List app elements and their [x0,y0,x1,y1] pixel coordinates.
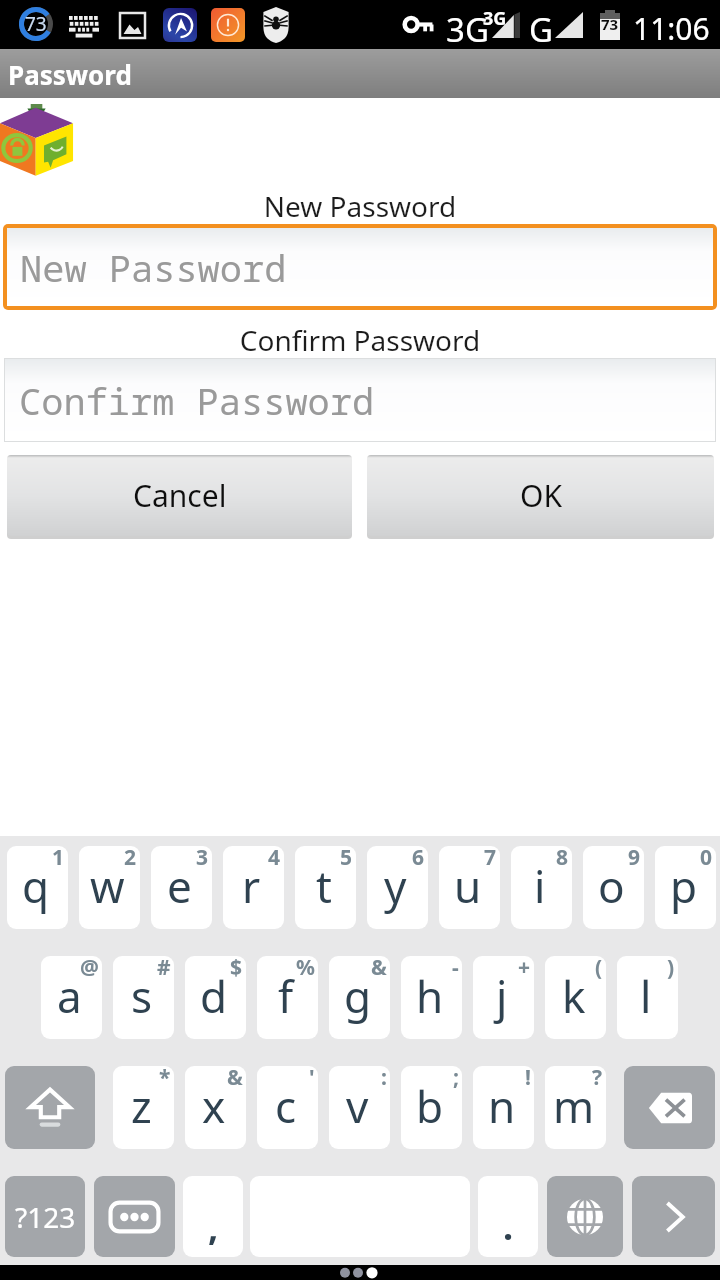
button[interactable]: ; [401,1066,462,1149]
staticText: y [384,856,407,916]
button[interactable]: Emoji [94,1176,175,1257]
button[interactable]: @ [41,956,102,1039]
staticText: q [22,856,50,916]
staticText: 5 [340,846,353,872]
staticText: ; [453,1066,459,1092]
button[interactable]: - [401,956,462,1039]
staticText: m [553,1076,595,1136]
button[interactable]: 1 [7,846,68,929]
button[interactable]: Shift [5,1066,95,1149]
staticText: 1 [52,846,65,872]
staticText: New Password [20,242,287,292]
staticText: w [90,856,125,916]
staticText: x [202,1076,226,1136]
staticText: 3G [483,6,507,31]
staticText: 9 [628,846,641,872]
staticText: Cancel [133,475,227,516]
button[interactable]: ?123 [5,1176,85,1257]
staticText: b [416,1076,444,1136]
staticText: G [529,7,554,52]
button[interactable]: & [185,1066,246,1149]
staticText: i [534,856,546,916]
staticText: a [57,966,82,1026]
staticText: @ [80,956,99,982]
staticText: s [131,966,153,1026]
button[interactable]: 0 [655,846,716,929]
staticText: d [200,966,228,1026]
staticText: OK [520,475,562,516]
staticText: u [454,856,482,916]
button[interactable]: Language [547,1176,623,1257]
staticText: ( [595,956,603,982]
staticText: & [371,956,387,982]
staticText: $ [230,956,243,982]
staticText: e [167,856,192,916]
button[interactable]: 3 [151,846,212,929]
button[interactable]: ! [473,1066,534,1149]
button[interactable]: . [478,1176,538,1257]
staticText: 3G [446,7,489,52]
staticText: p [670,856,698,916]
staticText: 6 [412,846,425,872]
staticText: . [503,1202,514,1251]
button[interactable]: Enter [632,1176,715,1257]
staticText: Confirm Password [0,321,720,359]
button[interactable]: 4 [223,846,284,929]
staticText: l [640,966,652,1026]
button[interactable]: 7 [439,846,500,929]
staticText: n [488,1076,516,1136]
button[interactable]: + [473,956,534,1039]
button[interactable]: New Password [7,228,713,306]
staticText: 7 [484,846,497,872]
button[interactable]: & [329,956,390,1039]
button[interactable]: : [329,1066,390,1149]
staticText: 73 [25,11,47,37]
staticText: 0 [700,846,713,872]
button[interactable]: ' [257,1066,318,1149]
staticText: - [452,956,459,982]
staticText: 4 [268,846,281,872]
staticText: & [227,1066,243,1092]
staticText: : [381,1066,387,1092]
button[interactable]: ( [545,956,606,1039]
staticText: ) [667,956,675,982]
staticText: r [242,856,261,916]
staticText: ' [309,1066,315,1092]
staticText: f [278,966,294,1026]
button[interactable]: 5 [295,846,356,929]
button[interactable]: 2 [79,846,140,929]
button[interactable]: # [113,956,174,1039]
button[interactable]: Confirm Password [5,359,715,441]
staticText: o [598,856,625,916]
staticText: z [131,1076,152,1136]
button[interactable]: , [183,1176,243,1257]
button[interactable]: * [113,1066,174,1149]
button[interactable]: Cancel [7,455,352,536]
staticText: % [296,956,315,982]
button[interactable]: % [257,956,318,1039]
staticText: ? [592,1066,603,1092]
staticText: k [562,966,586,1026]
staticText: + [518,956,531,982]
button[interactable]: OK [367,455,714,536]
button[interactable]: 8 [511,846,572,929]
staticText: Password [8,57,132,92]
button[interactable]: Backspace [624,1066,715,1149]
button[interactable]: 9 [583,846,644,929]
staticText: , [208,1202,219,1251]
button[interactable]: 6 [367,846,428,929]
button[interactable]: ? [545,1066,606,1149]
staticText: 11:06 [633,8,710,49]
staticText: 3 [196,846,209,872]
staticText: ?123 [15,1198,76,1236]
staticText: * [159,1066,171,1092]
button[interactable]: ) [617,956,678,1039]
staticText: t [316,856,332,916]
button[interactable]: $ [185,956,246,1039]
staticText: Confirm Password [19,375,375,425]
staticText: 2 [124,846,137,872]
staticText: 8 [556,846,569,872]
staticText: v [346,1076,369,1136]
staticText: New Password [0,187,720,225]
